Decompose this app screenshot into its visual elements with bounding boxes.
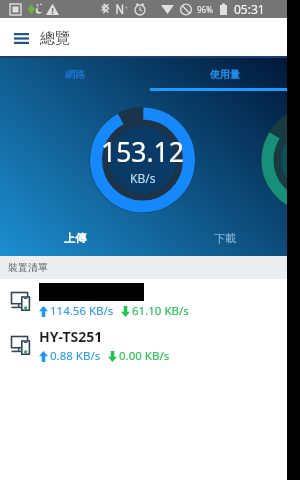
staticText: 總覽 (40, 29, 70, 48)
button[interactable]: 使用量 (150, 58, 300, 91)
staticText: 0.00 KB/s (119, 348, 170, 364)
staticText: 0.88 KB/s (50, 348, 101, 364)
button[interactable]: HY-TS251 (0, 323, 300, 367)
staticText: 下載 (214, 231, 236, 245)
staticText: HY-TS251 (39, 327, 103, 346)
staticText: 裝置清單 (8, 261, 48, 274)
staticText: 153.12 (101, 134, 184, 170)
staticText: KB/s (130, 170, 156, 186)
button[interactable]: 下載 (150, 220, 300, 256)
button[interactable]: Menu (7, 24, 35, 52)
staticText: 網路 (65, 68, 85, 81)
staticText: 上傳 (64, 231, 86, 245)
button[interactable]: 114.56 KB/s (0, 279, 300, 323)
staticText: 61.10 KB/s (132, 303, 189, 319)
staticText: 114.56 KB/s (50, 303, 114, 319)
staticText: 96% (197, 4, 213, 15)
staticText: 05:31 (234, 1, 265, 17)
button[interactable]: 網路 (0, 58, 150, 91)
staticText: 使用量 (210, 68, 240, 81)
button[interactable]: 上傳 (0, 220, 150, 256)
